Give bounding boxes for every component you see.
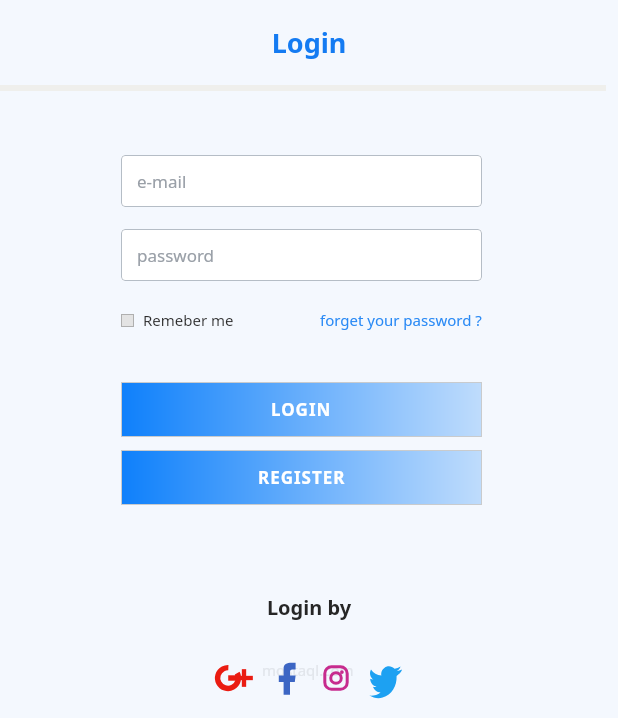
button[interactable]: Login with Google Plus bbox=[212, 658, 252, 698]
button[interactable]: forget your password ? bbox=[320, 310, 482, 330]
staticText: forget your password ? bbox=[320, 310, 482, 330]
staticText: mostaql.com bbox=[262, 660, 354, 680]
staticText: REGISTER bbox=[258, 466, 346, 489]
button[interactable]: Login with Twitter bbox=[367, 658, 407, 698]
button[interactable]: Remeber me bbox=[121, 310, 238, 330]
button[interactable]: e-mail bbox=[121, 155, 482, 207]
button[interactable]: password bbox=[121, 229, 482, 281]
button[interactable]: Login with Instagram bbox=[316, 658, 356, 698]
staticText: Login by bbox=[0, 594, 618, 621]
staticText: e-mail bbox=[137, 170, 187, 193]
button[interactable]: LOGIN bbox=[121, 382, 482, 437]
staticText: Remeber me bbox=[143, 310, 234, 330]
staticText: LOGIN bbox=[271, 398, 332, 421]
staticText: Login bbox=[0, 24, 618, 61]
button[interactable]: REGISTER bbox=[121, 450, 482, 505]
staticText: password bbox=[137, 244, 215, 267]
button[interactable]: Login with Facebook bbox=[266, 658, 306, 698]
